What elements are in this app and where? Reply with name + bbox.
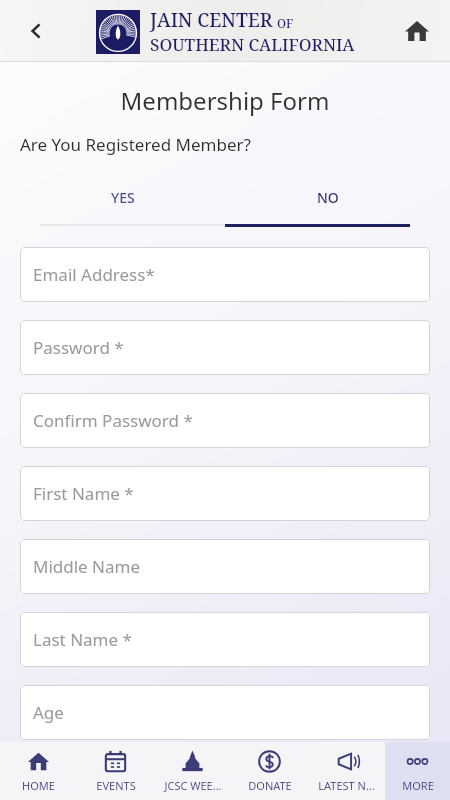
staticText: JCSC WEE... [164, 778, 222, 793]
button[interactable]: Email Address* [20, 247, 430, 302]
button[interactable]: MORE [385, 742, 450, 800]
staticText: DONATE [248, 778, 292, 793]
staticText: OF [277, 15, 294, 31]
button[interactable]: Password * [20, 320, 430, 375]
staticText: NO [317, 188, 339, 207]
staticText: Last Name * [33, 628, 132, 651]
button[interactable]: Back [12, 7, 60, 55]
staticText: First Name * [33, 482, 134, 505]
staticText: JAIN CENTER [150, 7, 273, 33]
button[interactable]: YES [20, 180, 225, 214]
staticText: Age [33, 701, 64, 724]
staticText: Password * [33, 336, 124, 359]
staticText: EVENTS [96, 778, 136, 793]
button[interactable]: First Name * [20, 466, 430, 521]
staticText: Are You Registered Member? [20, 133, 251, 156]
button[interactable]: EVENTS [77, 742, 154, 800]
button[interactable]: LATEST N... [308, 742, 385, 800]
button[interactable]: JCSC WEE... [154, 742, 231, 800]
button[interactable]: DONATE [231, 742, 308, 800]
button[interactable]: Age [20, 685, 430, 740]
button[interactable]: Confirm Password * [20, 393, 430, 448]
button[interactable]: NO [225, 180, 430, 214]
staticText: HOME [22, 778, 55, 793]
staticText: Middle Name [33, 555, 141, 578]
staticText: MORE [402, 778, 434, 793]
staticText: LATEST N... [318, 778, 375, 793]
staticText: Membership Form [0, 84, 450, 117]
button[interactable]: HOME [0, 742, 77, 800]
button[interactable]: Middle Name [20, 539, 430, 594]
staticText: Email Address* [33, 263, 155, 286]
staticText: YES [111, 188, 135, 207]
button[interactable]: Last Name * [20, 612, 430, 667]
staticText: Confirm Password * [33, 409, 193, 432]
staticText: SOUTHERN CALIFORNIA [150, 33, 355, 56]
button[interactable]: Home [394, 8, 440, 54]
